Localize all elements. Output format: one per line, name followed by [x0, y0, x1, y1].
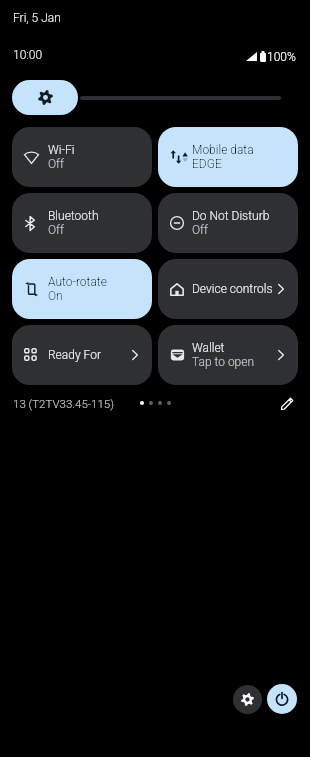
button[interactable]: Brightness: [12, 80, 281, 115]
button[interactable]: Auto-rotate: [12, 259, 152, 319]
button[interactable]: Ready For: [12, 325, 152, 385]
button[interactable]: Do Not Disturb: [158, 193, 298, 253]
staticText: 100%: [267, 50, 296, 64]
staticText: Tap to open: [192, 355, 255, 369]
staticText: Auto-rotate: [48, 275, 107, 289]
button[interactable]: Mobile data: [158, 127, 298, 187]
button[interactable]: Device controls: [158, 259, 298, 319]
staticText: Ready For: [48, 348, 101, 362]
button[interactable]: Wi-Fi: [12, 127, 152, 187]
button[interactable]: Edit: [277, 393, 297, 413]
button[interactable]: Settings: [233, 685, 262, 714]
staticText: Do Not Disturb: [192, 209, 270, 223]
staticText: 13 (T2TV33.45-115): [13, 397, 114, 410]
staticText: Fri, 5 Jan: [13, 11, 61, 25]
staticText: Bluetooth: [48, 209, 99, 223]
staticText: Device controls: [192, 282, 273, 296]
staticText: On: [48, 289, 63, 303]
staticText: 10:00: [13, 48, 43, 62]
staticText: Off: [192, 223, 209, 237]
staticText: Wallet: [192, 341, 225, 355]
button[interactable]: Bluetooth: [12, 193, 152, 253]
button[interactable]: Power: [267, 684, 297, 714]
staticText: Off: [48, 157, 65, 171]
staticText: EDGE: [192, 157, 222, 171]
button[interactable]: Wallet: [158, 325, 298, 385]
staticText: Mobile data: [192, 143, 254, 157]
staticText: Wi-Fi: [48, 143, 75, 157]
staticText: Off: [48, 223, 65, 237]
